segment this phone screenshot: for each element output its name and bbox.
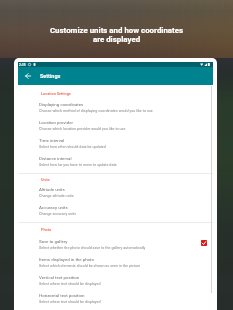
button[interactable]: Items displayed in the photo (18, 250, 213, 268)
staticText: Location Settings (41, 91, 71, 95)
staticText: Distance interval (39, 156, 72, 161)
staticText: Customize units and how coordinates are … (0, 26, 233, 44)
staticText: Choose which location provider would you… (39, 127, 126, 131)
staticText: Select how far you have to move to updat… (39, 163, 117, 167)
button[interactable]: Vertical text position (18, 268, 213, 286)
button[interactable]: Accuracy units (18, 198, 213, 216)
staticText: Vertical text position (39, 275, 80, 280)
button[interactable]: Location provider (18, 113, 213, 131)
button[interactable]: Time interval (18, 131, 213, 149)
button[interactable]: Save to gallery (18, 232, 213, 250)
staticText: Save to gallery (39, 239, 68, 244)
staticText: Time interval (39, 138, 65, 143)
staticText: Select how often should data be updated (39, 145, 106, 149)
staticText: Photo (41, 227, 52, 231)
staticText: Units (41, 177, 50, 181)
staticText: Location provider (39, 120, 73, 125)
staticText: Select which elements should be shown as… (39, 264, 141, 268)
staticText: Items displayed in the photo (39, 257, 94, 262)
staticText: Select whether the photo should save to … (39, 246, 146, 250)
staticText: Select where text should be displayed (39, 282, 101, 286)
button[interactable]: Save to gallery, checked (200, 239, 208, 247)
button[interactable]: Altitude units (18, 180, 213, 198)
button[interactable]: Navigate up (20, 67, 36, 85)
button[interactable]: Displaying coordinates (18, 95, 213, 113)
button[interactable]: Horizontal text position (18, 286, 213, 304)
staticText: Change altitude units (39, 194, 74, 198)
staticText: Displaying coordinates (39, 102, 84, 107)
button[interactable]: Distance interval (18, 149, 213, 167)
staticText: Select where text should be displayed (39, 300, 101, 304)
staticText: Altitude units (39, 187, 65, 192)
staticText: Settings (40, 73, 61, 79)
staticText: Change accuracy units (39, 212, 77, 216)
staticText: Choose which method of displaying coordi… (39, 109, 153, 113)
staticText: Horizontal text position (39, 293, 85, 298)
staticText: Accuracy units (39, 205, 68, 210)
staticText: 2:35 (19, 63, 26, 67)
